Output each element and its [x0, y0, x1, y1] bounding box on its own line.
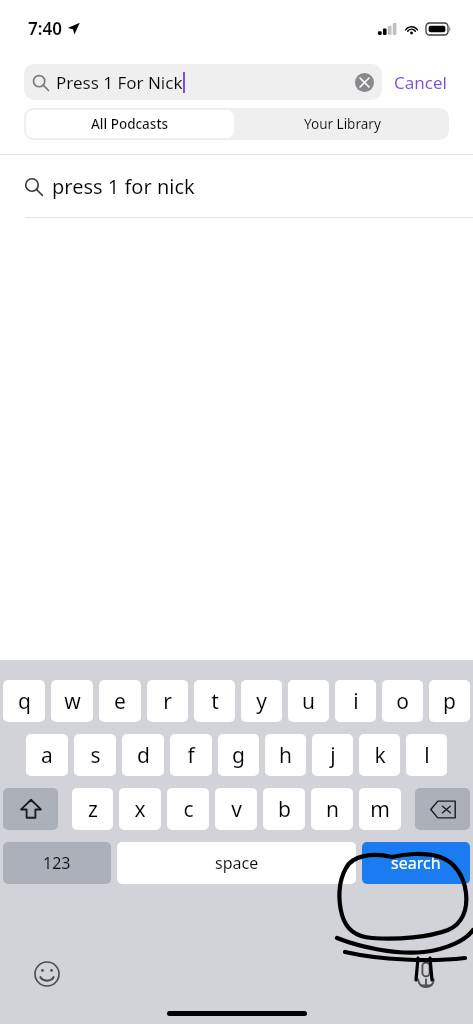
staticText: y: [256, 687, 267, 716]
staticText: All Podcasts: [91, 115, 169, 133]
button[interactable]: k: [359, 734, 400, 776]
button[interactable]: Emoji: [32, 959, 62, 989]
staticText: e: [114, 687, 126, 716]
staticText: Cancel: [394, 71, 447, 94]
button[interactable]: Clear text: [355, 73, 374, 92]
button[interactable]: Dictation: [411, 959, 441, 989]
staticText: search: [391, 852, 441, 874]
button[interactable]: r: [147, 680, 188, 722]
button[interactable]: w: [51, 680, 93, 722]
staticText: 123: [43, 852, 71, 874]
button[interactable]: Shift: [3, 788, 58, 830]
button[interactable]: f: [170, 734, 212, 776]
staticText: k: [374, 741, 386, 770]
button[interactable]: s: [74, 734, 116, 776]
staticText: 7:40: [28, 17, 62, 40]
staticText: space: [215, 852, 259, 874]
staticText: Press 1 For Nick: [56, 71, 183, 94]
button[interactable]: u: [288, 680, 329, 722]
staticText: o: [396, 687, 409, 716]
button[interactable]: c: [167, 788, 209, 830]
button[interactable]: e: [99, 680, 141, 722]
button[interactable]: p: [429, 680, 470, 722]
staticText: i: [353, 687, 359, 716]
staticText: z: [88, 795, 98, 824]
button[interactable]: i: [335, 680, 376, 722]
staticText: d: [137, 741, 150, 770]
staticText: n: [326, 795, 339, 824]
button[interactable]: y: [241, 680, 282, 722]
staticText: Your Library: [304, 115, 381, 133]
button[interactable]: v: [215, 788, 257, 830]
staticText: w: [64, 687, 81, 716]
staticText: c: [183, 795, 194, 824]
button[interactable]: Cancel: [382, 65, 449, 100]
staticText: j: [330, 741, 336, 770]
button[interactable]: m: [359, 788, 401, 830]
button[interactable]: g: [218, 734, 259, 776]
staticText: s: [90, 741, 101, 770]
button[interactable]: q: [3, 680, 45, 722]
staticText: p: [443, 687, 456, 716]
button[interactable]: 123: [3, 842, 111, 884]
staticText: t: [211, 687, 219, 716]
staticText: a: [41, 741, 53, 770]
button[interactable]: d: [122, 734, 164, 776]
staticText: m: [370, 795, 390, 824]
staticText: l: [424, 741, 430, 770]
staticText: x: [134, 795, 146, 824]
button[interactable]: z: [72, 788, 113, 830]
button[interactable]: t: [194, 680, 235, 722]
button[interactable]: l: [406, 734, 447, 776]
button[interactable]: j: [312, 734, 353, 776]
button[interactable]: x: [119, 788, 161, 830]
staticText: b: [278, 795, 291, 824]
button[interactable]: Your Library: [236, 108, 449, 140]
staticText: u: [302, 687, 315, 716]
button[interactable]: space: [117, 842, 356, 884]
staticText: press 1 for nick: [52, 173, 195, 200]
staticText: v: [231, 795, 242, 824]
staticText: q: [18, 687, 31, 716]
button[interactable]: press 1 for nick: [0, 155, 473, 218]
button[interactable]: b: [263, 788, 305, 830]
staticText: f: [187, 741, 195, 770]
button[interactable]: All Podcasts: [26, 110, 234, 138]
button[interactable]: Backspace: [415, 788, 470, 830]
button[interactable]: h: [265, 734, 306, 776]
button[interactable]: Press 1 For Nick: [24, 64, 382, 100]
button[interactable]: n: [311, 788, 353, 830]
staticText: h: [279, 741, 292, 770]
staticText: r: [163, 687, 172, 716]
button[interactable]: a: [26, 734, 68, 776]
button[interactable]: o: [382, 680, 423, 722]
staticText: g: [232, 741, 245, 770]
button[interactable]: search: [362, 842, 470, 884]
